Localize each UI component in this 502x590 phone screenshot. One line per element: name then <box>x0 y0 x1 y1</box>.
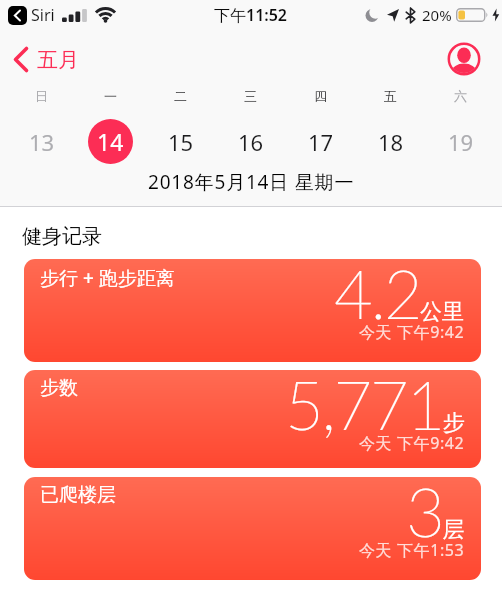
staticText: 六 <box>454 88 467 104</box>
staticText: 今天 下午9:42 <box>359 321 465 343</box>
button[interactable]: 步数 <box>24 370 481 468</box>
button[interactable]: 14 <box>88 119 133 164</box>
staticText: 健身记录 <box>22 224 102 249</box>
staticText: 已爬楼层 <box>40 483 116 507</box>
staticText: 20% <box>422 5 452 25</box>
button[interactable]: 13 <box>19 119 64 164</box>
button[interactable]: 19 <box>438 119 483 164</box>
button[interactable]: 15 <box>158 119 203 164</box>
button[interactable]: 16 <box>228 119 273 164</box>
button[interactable]: 步行 + 跑步距离 <box>24 259 481 362</box>
staticText: 一 <box>104 88 117 104</box>
staticText: 13 <box>29 127 55 157</box>
staticText: 14 <box>97 126 124 157</box>
staticText: 17 <box>308 127 334 157</box>
button[interactable]: 17 <box>298 119 343 164</box>
staticText: 步行 + 跑步距离 <box>40 265 175 291</box>
staticText: Siri <box>31 4 55 26</box>
button[interactable]: 18 <box>368 119 413 164</box>
staticText: 18 <box>378 127 404 157</box>
staticText: 19 <box>448 127 474 157</box>
staticText: 16 <box>238 127 264 157</box>
button[interactable]: 已爬楼层 <box>24 477 481 580</box>
staticText: 五 <box>384 88 397 104</box>
staticText: 今天 下午9:42 <box>359 432 465 454</box>
button[interactable] <box>447 42 481 76</box>
staticText: 15 <box>168 127 194 157</box>
button[interactable] <box>8 6 27 25</box>
staticText: 四 <box>314 88 327 104</box>
staticText: 步数 <box>40 376 78 400</box>
staticText: 二 <box>174 88 187 104</box>
button[interactable]: 五月 <box>13 46 79 73</box>
staticText: 三 <box>244 88 257 104</box>
staticText: 日 <box>35 88 48 104</box>
staticText: 今天 下午1:53 <box>359 539 465 561</box>
staticText: 3层 <box>406 477 465 551</box>
staticText: 5,771步 <box>285 370 465 444</box>
staticText: 2018年5月14日 星期一 <box>148 169 355 193</box>
staticText: 五月 <box>37 47 79 73</box>
staticText: 下午11:52 <box>214 4 288 26</box>
staticText: 4.2公里 <box>334 259 465 333</box>
